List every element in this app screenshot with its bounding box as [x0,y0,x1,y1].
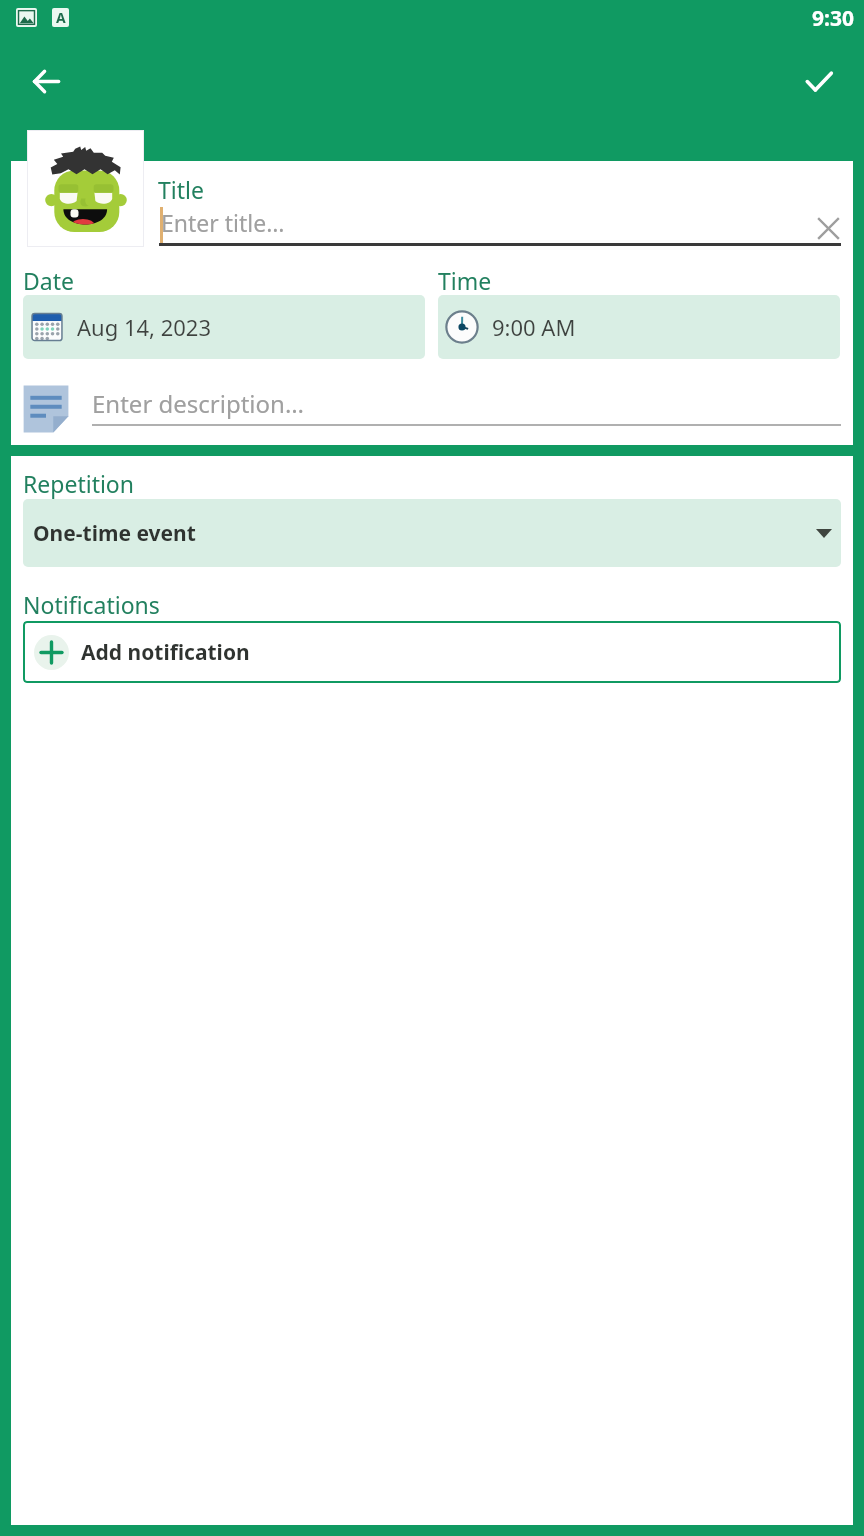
staticText: Enter description… [92,387,304,420]
staticText: Repetition [23,468,134,499]
button[interactable]: Aug 14, 2023 [23,295,425,359]
button[interactable]: 9:00 AM [438,295,840,359]
staticText: A [56,8,66,27]
button[interactable]: Enter description… [92,383,841,426]
button[interactable]: Enter title… [159,205,804,246]
button[interactable]: Add notification [23,621,841,683]
staticText: 9:30 [812,4,854,33]
staticText: Enter title… [161,207,285,238]
staticText: Add notification [81,638,250,667]
staticText: Aug 14, 2023 [77,312,212,342]
staticText: Date [23,265,74,296]
staticText: Notifications [23,589,160,620]
button[interactable]: Save [795,57,843,105]
staticText: Time [438,265,492,296]
staticText: One-time event [33,519,196,548]
button[interactable]: Back [22,57,70,105]
staticText: Title [158,174,204,205]
staticText: 9:00 AM [492,312,576,342]
button[interactable]: One-time event [23,499,841,567]
button[interactable]: Choose event icon [36,139,136,239]
button[interactable]: Clear title [806,206,851,251]
